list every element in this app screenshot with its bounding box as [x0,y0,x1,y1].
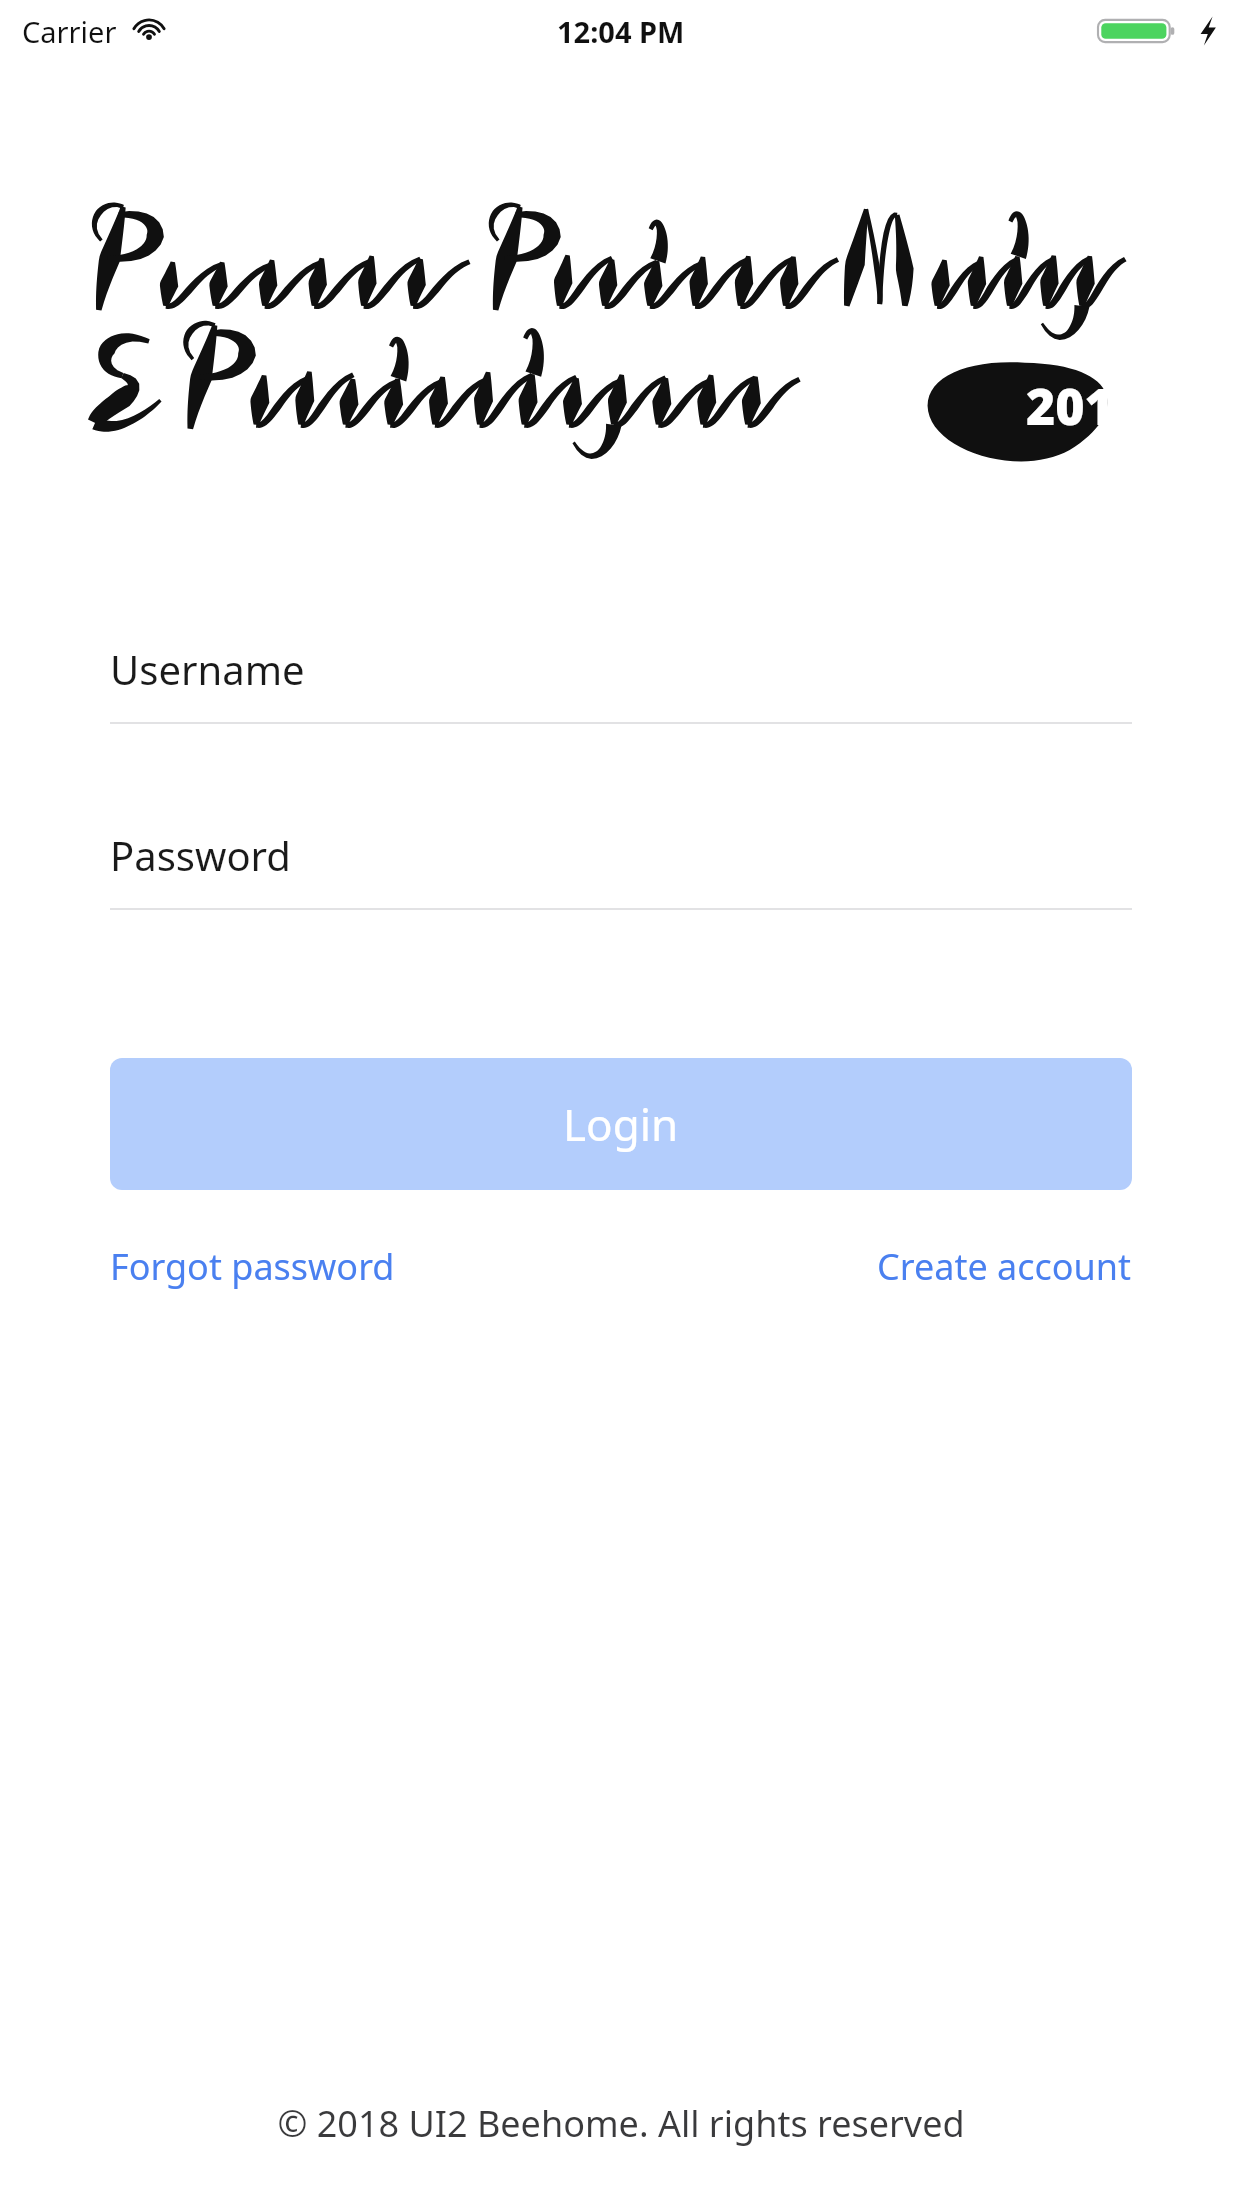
staticText: Username [110,642,305,696]
button[interactable]: Login [110,1058,1132,1190]
staticText: 12:04 PM [557,12,685,51]
staticText: Carrier [22,12,117,51]
staticText: 2018 [1026,372,1144,440]
button[interactable]: Create account [877,1242,1132,1291]
staticText: Password [110,828,291,882]
button[interactable]: Forgot password [110,1242,395,1291]
staticText: Create account [877,1242,1132,1291]
button[interactable]: Password [110,828,1132,910]
button[interactable]: Username [110,642,1132,724]
staticText: © 2018 UI2 Beehome. All rights reserved [0,2099,1242,2148]
staticText: Login [563,1094,679,1154]
staticText: Forgot password [110,1242,395,1291]
